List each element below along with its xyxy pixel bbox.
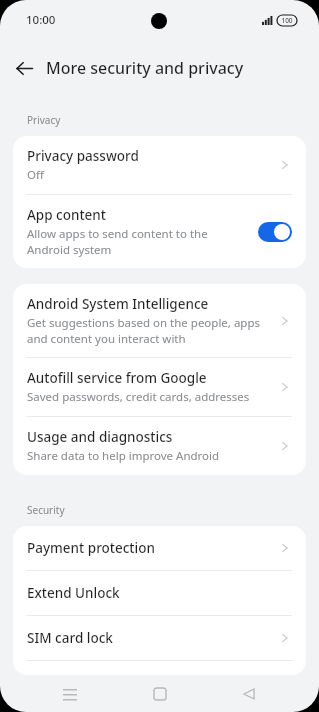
staticText: More security and privacy bbox=[46, 57, 244, 79]
button[interactable]: Autofill service from Google bbox=[13, 358, 306, 416]
staticText: Android System Intelligence bbox=[27, 295, 209, 313]
button[interactable]: App content bbox=[13, 195, 306, 268]
staticText: 10:00 bbox=[26, 12, 56, 28]
button[interactable]: Privacy password bbox=[13, 136, 306, 194]
staticText: Extend Unlock bbox=[27, 584, 120, 602]
staticText: Autofill service from Google bbox=[27, 369, 207, 387]
staticText: Privacy bbox=[27, 113, 61, 127]
button[interactable]: App content toggle bbox=[258, 222, 292, 242]
button[interactable]: Android System Intelligence bbox=[13, 284, 306, 357]
staticText: Privacy password bbox=[27, 147, 139, 165]
staticText: Saved passwords, credit cards, addresses bbox=[27, 389, 250, 405]
staticText: Security bbox=[27, 503, 65, 517]
button[interactable]: Extend Unlock bbox=[13, 571, 306, 615]
button[interactable]: Home bbox=[140, 675, 180, 712]
button[interactable]: Usage and diagnostics bbox=[13, 417, 306, 475]
staticText: Usage and diagnostics bbox=[27, 428, 173, 446]
staticText: Allow apps to send content to the Androi… bbox=[27, 226, 208, 257]
staticText: SIM card lock bbox=[27, 629, 113, 647]
staticText: 100 bbox=[281, 16, 293, 25]
staticText: App content bbox=[27, 206, 106, 224]
staticText: Get suggestions based on the people, app… bbox=[27, 315, 261, 346]
staticText: Share data to help improve Android bbox=[27, 448, 220, 464]
button[interactable]: SIM card lock bbox=[13, 616, 306, 660]
button[interactable]: Payment protection bbox=[13, 526, 306, 570]
button[interactable]: Back bbox=[229, 675, 269, 712]
button[interactable]: Recent apps bbox=[50, 675, 90, 712]
staticText: Off bbox=[27, 167, 44, 183]
staticText: Payment protection bbox=[27, 539, 155, 557]
button[interactable]: Back bbox=[11, 55, 37, 81]
